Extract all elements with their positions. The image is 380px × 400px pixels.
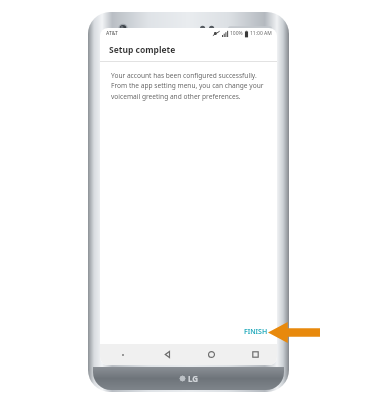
staticText: 100%	[230, 30, 243, 37]
button[interactable]: Recent apps	[233, 344, 277, 365]
staticText: 11:00 AM	[250, 30, 272, 37]
staticText: Your account has been configured success…	[111, 71, 266, 101]
staticText: Setup complete	[109, 44, 176, 56]
button[interactable]: Home	[189, 344, 233, 365]
staticText: AT&T	[106, 30, 118, 37]
button[interactable]: FINISH	[235, 323, 277, 341]
staticText: FINISH	[244, 327, 268, 337]
button[interactable]: Back	[145, 344, 189, 365]
staticText: LG	[188, 373, 199, 384]
button[interactable]: Menu	[100, 344, 145, 365]
